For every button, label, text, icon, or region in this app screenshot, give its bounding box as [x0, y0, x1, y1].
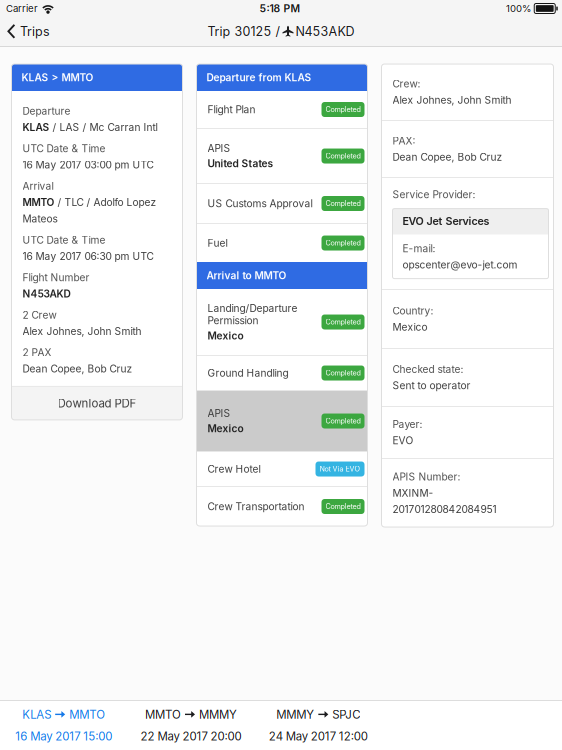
staticText: 24 May 2017 12:00 [269, 729, 368, 743]
staticText: Arrival [22, 180, 53, 192]
staticText: UTC Date & Time [22, 234, 105, 246]
button[interactable]: US Customs Approval [196, 184, 367, 223]
staticText: / TLC / Adolfo Lopez [54, 196, 156, 209]
staticText: UTC Date & Time [22, 142, 105, 155]
staticText: Mateos [22, 213, 57, 225]
staticText: 5:18 PM [259, 2, 300, 15]
staticText: Crew Transportation [207, 500, 304, 513]
button[interactable]: Flight Plan [196, 91, 367, 128]
staticText: Completed [325, 502, 360, 511]
staticText: 201701280842084951 [392, 503, 496, 515]
staticText: Completed [325, 318, 360, 326]
staticText: MMMY [199, 708, 237, 721]
staticText: N453AKD [295, 24, 354, 39]
button[interactable]: Fuel [196, 224, 367, 262]
staticText: 100% [506, 3, 531, 14]
staticText: Checked state: [392, 363, 463, 375]
staticText: N453AKD [22, 288, 70, 300]
staticText: Flight Number [22, 271, 89, 284]
staticText: 16 May 2017 15:00 [15, 729, 112, 743]
staticText: Download PDF [57, 396, 136, 410]
staticText: Completed [325, 105, 360, 114]
staticText: KLAS > MMTO [21, 71, 93, 84]
staticText: Crew Hotel [207, 463, 260, 475]
staticText: Mexico [207, 330, 243, 342]
button[interactable]: Download PDF [11, 387, 182, 420]
staticText: Landing/Departure Permission [207, 302, 297, 327]
button[interactable]: APIS [196, 391, 367, 451]
staticText: Mexico [207, 422, 243, 435]
staticText: Crew: [392, 78, 420, 90]
button[interactable]: Crew Hotel [196, 452, 367, 486]
staticText: MMMY [276, 708, 314, 721]
staticText: Trip 30125 / [207, 24, 280, 39]
staticText: Completed [325, 369, 360, 377]
button[interactable]: MMMY [255, 701, 382, 750]
staticText: Carrier [6, 3, 38, 14]
staticText: Mexico [392, 321, 427, 333]
staticText: Arrival to MMTO [206, 269, 286, 282]
staticText: APIS [207, 407, 230, 419]
staticText: 16 May 2017 06:30 pm UTC [22, 250, 153, 262]
staticText: MXINM- [392, 487, 433, 499]
staticText: Not Via EVO [319, 465, 360, 473]
staticText: opscenter@evo-jet.com [402, 259, 517, 271]
button[interactable]: Crew Transportation [196, 487, 367, 526]
staticText: Departure [22, 105, 70, 117]
staticText: SPJC [332, 708, 360, 721]
staticText: Alex Johnes, John Smith [392, 94, 511, 106]
staticText: Country: [392, 305, 433, 317]
staticText: Trips [20, 24, 50, 39]
staticText: Payer: [392, 418, 422, 430]
staticText: / LAS / Mc Carran Intl [49, 121, 157, 134]
staticText: Service Provider: [392, 188, 475, 201]
staticText: Sent to operator [392, 379, 470, 392]
staticText: 22 May 2017 20:00 [140, 729, 241, 743]
staticText: Dean Copee, Bob Cruz [392, 151, 502, 163]
button[interactable]: APIS [196, 129, 367, 183]
staticText: Completed [325, 417, 360, 425]
staticText: Alex Johnes, John Smith [22, 325, 141, 337]
staticText: EVO Jet Services [402, 215, 489, 228]
button[interactable]: KLAS [0, 701, 127, 750]
staticText: Flight Plan [207, 103, 255, 116]
staticText: PAX: [392, 135, 415, 147]
button[interactable]: MMTO [127, 701, 255, 750]
staticText: Fuel [207, 237, 227, 249]
button[interactable]: Back to Trips [0, 17, 57, 46]
button[interactable]: Landing/Departure Permission [196, 289, 367, 355]
staticText: KLAS [22, 708, 51, 721]
staticText: MMTO [22, 196, 54, 209]
staticText: Completed [325, 152, 360, 160]
staticText: Dean Copee, Bob Cruz [22, 363, 132, 375]
staticText: Ground Handling [207, 367, 288, 379]
staticText: APIS Number: [392, 471, 460, 483]
staticText: KLAS [22, 121, 49, 134]
staticText: Completed [325, 199, 360, 208]
staticText: 2 Crew [22, 309, 56, 321]
staticText: 2 PAX [22, 346, 51, 359]
staticText: Departure from KLAS [206, 71, 311, 84]
staticText: 16 May 2017 03:00 pm UTC [22, 159, 153, 171]
button[interactable]: Ground Handling [196, 356, 367, 390]
staticText: United States [207, 157, 273, 170]
staticText: APIS [207, 142, 230, 154]
staticText: MMTO [69, 708, 105, 721]
staticText: EVO [392, 434, 413, 447]
staticText: US Customs Approval [207, 197, 312, 210]
staticText: Completed [325, 239, 360, 247]
staticText: E-mail: [402, 242, 435, 255]
staticText: MMTO [145, 708, 181, 721]
